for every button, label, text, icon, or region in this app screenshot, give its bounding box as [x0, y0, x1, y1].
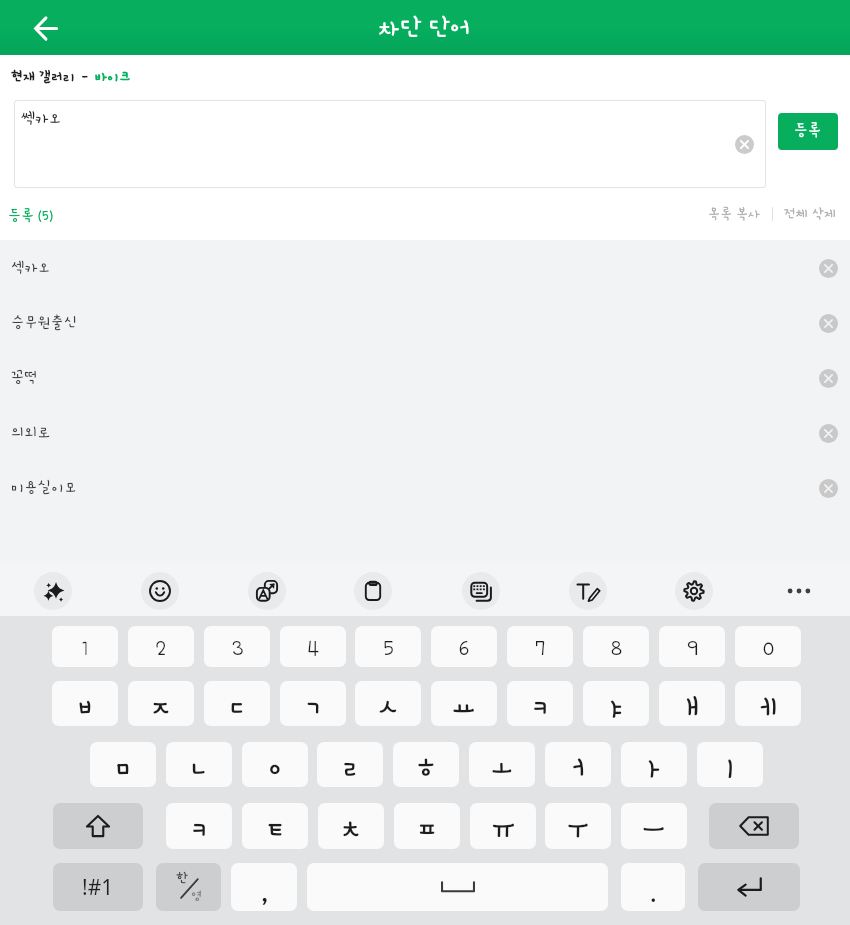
- button[interactable]: Remove word: [817, 257, 839, 279]
- staticText: 9: [687, 637, 698, 659]
- button[interactable]: ㅍ: [394, 803, 460, 849]
- button[interactable]: ㄹ: [317, 742, 383, 787]
- button[interactable]: Settings: [675, 572, 713, 610]
- button[interactable]: ㄴ: [166, 742, 232, 787]
- staticText: ㅛ: [450, 690, 478, 724]
- button[interactable]: 승무원출신: [0, 295, 850, 350]
- staticText: ㅜ: [564, 812, 592, 846]
- button[interactable]: AI suggestions: [34, 572, 72, 610]
- staticText: 6: [459, 637, 469, 659]
- staticText: 3: [232, 637, 243, 659]
- button[interactable]: ㅅ: [355, 681, 421, 726]
- staticText: ㅐ: [678, 690, 706, 724]
- staticText: 승무원출신: [11, 314, 78, 331]
- staticText: 2: [156, 637, 166, 659]
- staticText: 5: [383, 637, 394, 659]
- staticText: 등록: [794, 122, 822, 139]
- button[interactable]: Keyboard layouts: [462, 572, 500, 610]
- button[interactable]: ㅠ: [470, 803, 536, 849]
- button[interactable]: ㅈ: [128, 681, 194, 726]
- button[interactable]: ㅋ: [166, 803, 232, 849]
- button[interactable]: 2: [128, 626, 194, 667]
- button[interactable]: Space: [307, 863, 608, 911]
- button[interactable]: ㄷ: [204, 681, 270, 726]
- staticText: ㅈ: [147, 690, 175, 724]
- button[interactable]: 0: [735, 626, 801, 667]
- button[interactable]: Comma: [231, 863, 297, 911]
- button[interactable]: 5: [355, 626, 421, 667]
- button[interactable]: 4: [280, 626, 346, 667]
- button[interactable]: ㅗ: [469, 742, 535, 787]
- staticText: .: [650, 877, 657, 907]
- button[interactable]: ㅑ: [583, 681, 649, 726]
- staticText: ㅗ: [488, 751, 516, 785]
- button[interactable]: 등록 (5): [8, 207, 53, 223]
- button[interactable]: Remove word: [817, 477, 839, 499]
- button[interactable]: Emoji: [141, 572, 179, 610]
- button[interactable]: ㄱ: [280, 681, 346, 726]
- button[interactable]: Korean English toggle: [156, 863, 221, 911]
- button[interactable]: Remove word: [817, 312, 839, 334]
- button[interactable]: Enter: [698, 863, 800, 911]
- button[interactable]: ㅇ: [242, 742, 308, 787]
- button[interactable]: ㅓ: [545, 742, 611, 787]
- staticText: 바이크: [95, 69, 132, 84]
- button[interactable]: 전체 삭제: [784, 206, 837, 221]
- staticText: ㄱ: [299, 690, 327, 724]
- button[interactable]: ㅁ: [90, 742, 156, 787]
- staticText: ㅎ: [412, 751, 440, 785]
- button[interactable]: Clipboard: [354, 572, 392, 610]
- button[interactable]: ㅂ: [52, 681, 118, 726]
- staticText: ㅠ: [489, 812, 517, 846]
- staticText: 0: [763, 637, 774, 659]
- button[interactable]: 섹카오: [0, 240, 850, 295]
- button[interactable]: ㅛ: [431, 681, 497, 726]
- button[interactable]: Back: [23, 6, 67, 50]
- staticText: ㅋ: [526, 690, 554, 724]
- staticText: 현재 갤러리 －: [11, 69, 95, 84]
- button[interactable]: 3: [204, 626, 270, 667]
- button[interactable]: Translate: [248, 572, 286, 610]
- button[interactable]: 8: [583, 626, 649, 667]
- button[interactable]: ㅌ: [242, 803, 308, 849]
- button[interactable]: ㅜ: [545, 803, 611, 849]
- staticText: 영: [191, 889, 203, 903]
- button[interactable]: ㅡ: [621, 803, 687, 849]
- button[interactable]: ㅎ: [393, 742, 459, 787]
- button[interactable]: ㅊ: [318, 803, 384, 849]
- button[interactable]: 쎅카오: [14, 100, 766, 188]
- staticText: 섹카오: [11, 259, 51, 276]
- button[interactable]: !#1: [53, 863, 143, 911]
- staticText: ㄴ: [185, 751, 213, 785]
- button[interactable]: Clear text: [731, 131, 757, 157]
- button[interactable]: 목록 복사: [708, 206, 761, 221]
- button[interactable]: 7: [507, 626, 573, 667]
- staticText: 미용실이모: [11, 479, 78, 496]
- button[interactable]: 9: [659, 626, 725, 667]
- staticText: ㅏ: [640, 751, 668, 785]
- button[interactable]: Shift: [53, 803, 143, 849]
- button[interactable]: ㅋ: [507, 681, 573, 726]
- button[interactable]: 미용실이모: [0, 460, 850, 515]
- staticText: ㅅ: [374, 690, 402, 724]
- button[interactable]: 등록: [778, 113, 838, 150]
- button[interactable]: 꽁떡: [0, 350, 850, 405]
- button[interactable]: 6: [431, 626, 497, 667]
- button[interactable]: Period: [621, 863, 685, 911]
- button[interactable]: More options: [780, 572, 818, 610]
- staticText: ㅂ: [71, 690, 99, 724]
- button[interactable]: Remove word: [817, 422, 839, 444]
- button[interactable]: 1: [52, 626, 118, 667]
- button[interactable]: 의외로: [0, 405, 850, 460]
- button[interactable]: Handwriting: [569, 572, 607, 610]
- button[interactable]: ㅣ: [697, 742, 763, 787]
- button[interactable]: ㅔ: [735, 681, 801, 726]
- staticText: 8: [611, 637, 622, 659]
- staticText: 한: [176, 871, 189, 886]
- staticText: ㅊ: [337, 812, 365, 846]
- button[interactable]: Backspace: [709, 803, 799, 849]
- staticText: 7: [535, 637, 545, 659]
- button[interactable]: ㅏ: [621, 742, 687, 787]
- button[interactable]: ㅐ: [659, 681, 725, 726]
- button[interactable]: Remove word: [817, 367, 839, 389]
